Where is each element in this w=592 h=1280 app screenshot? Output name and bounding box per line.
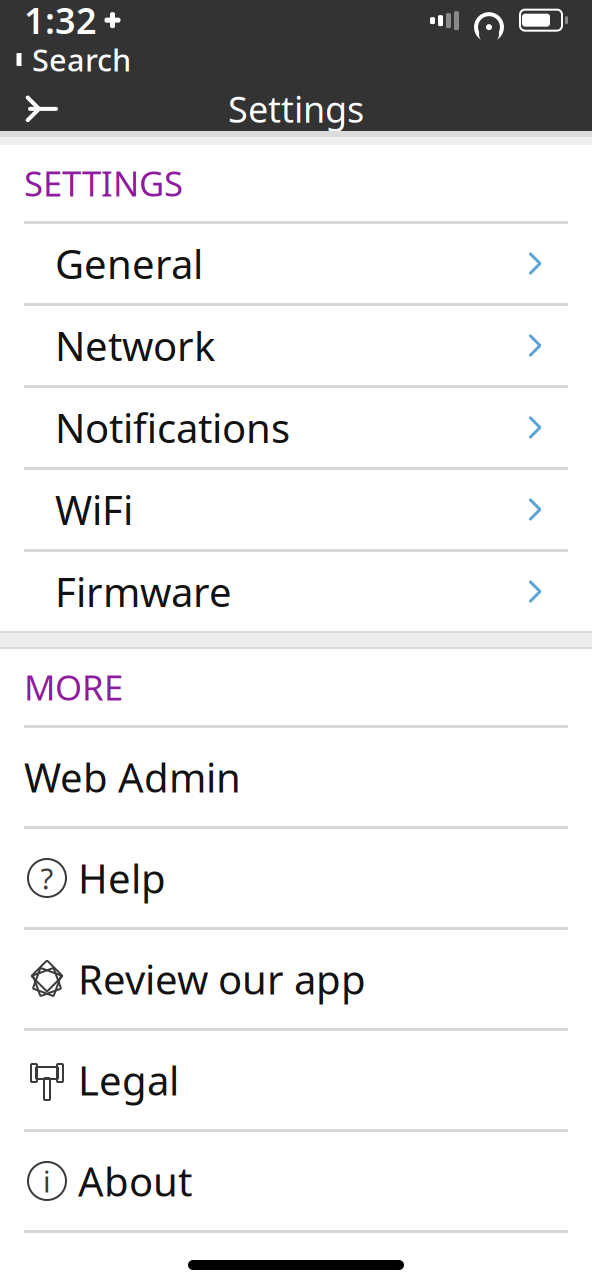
staticText: WiFi (55, 483, 133, 536)
staticText: General (55, 237, 203, 290)
button[interactable]: Review our app (0, 930, 592, 1028)
staticText: Web Admin (24, 750, 241, 803)
button[interactable]: WiFi (0, 470, 592, 549)
staticText: Legal (78, 1053, 179, 1106)
button[interactable]: Network (0, 306, 592, 385)
staticText: Notifications (55, 401, 290, 454)
staticText: MORE (24, 664, 123, 710)
staticText: Review our app (78, 952, 366, 1005)
staticText: Help (78, 851, 166, 904)
staticText: Settings (228, 85, 364, 133)
staticText: i (43, 1161, 51, 1200)
staticText: SETTINGS (24, 160, 183, 206)
button[interactable]: i (0, 1132, 592, 1230)
staticText: Search (32, 39, 131, 80)
button[interactable]: Back (18, 87, 62, 131)
button[interactable]: Firmware (0, 552, 592, 631)
button[interactable]: ? (0, 829, 592, 927)
staticText: About (78, 1154, 192, 1207)
button[interactable]: Notifications (0, 388, 592, 467)
button[interactable]: Web Admin (0, 728, 592, 826)
button[interactable]: Legal (0, 1031, 592, 1129)
staticText: 1:32 (24, 0, 97, 44)
button[interactable]: General (0, 224, 592, 303)
staticText: Network (55, 319, 215, 372)
staticText: ? (40, 858, 53, 897)
staticText: Firmware (55, 565, 232, 618)
